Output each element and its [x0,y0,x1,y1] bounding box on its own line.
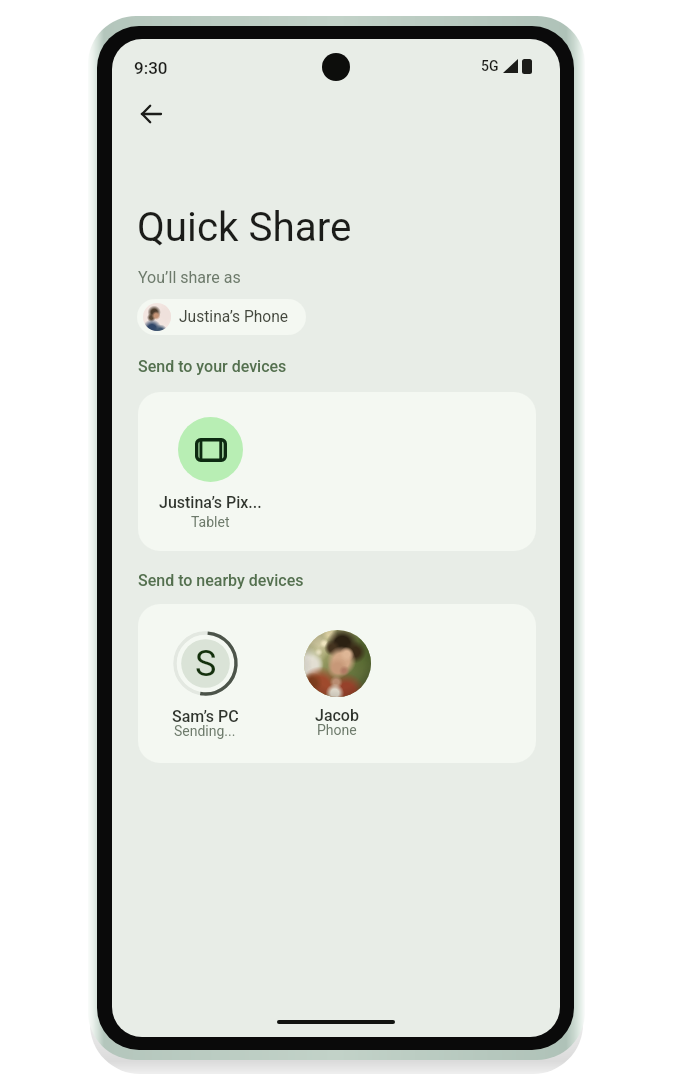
staticText: Quick Share [137,204,352,251]
staticText: S [195,643,217,685]
button[interactable]: Justina’s Phone [137,299,306,335]
button[interactable]: Justina’s Pix... [150,408,270,534]
staticText: Sam’s PC [172,707,239,726]
staticText: Justina’s Phone [179,308,289,326]
button[interactable]: Back [129,92,173,136]
staticText: Send to your devices [138,357,287,376]
staticText: 9:30 [134,58,168,78]
staticText: Sending... [174,723,236,739]
button[interactable]: S [145,623,265,743]
staticText: Send to nearby devices [138,571,304,590]
button[interactable]: Jacob [277,624,397,744]
staticText: Jacob [315,706,359,725]
staticText: You’ll share as [138,268,241,287]
staticText: Justina’s Pix... [159,493,262,512]
staticText: Phone [317,722,357,738]
staticText: Tablet [191,514,230,530]
staticText: 5G [481,58,499,74]
